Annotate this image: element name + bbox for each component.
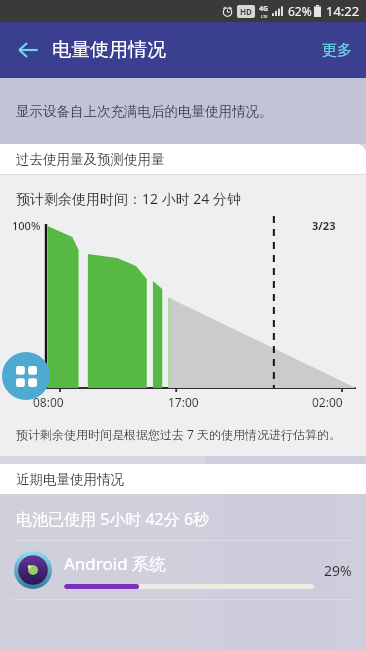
staticText: 100% — [12, 218, 41, 233]
staticText: 更多 — [322, 41, 352, 60]
staticText: 过去使用量及预测使用量 — [16, 151, 165, 168]
staticText: 02:00 — [312, 394, 343, 410]
staticText: LTE — [261, 14, 268, 19]
staticText: 0% — [25, 376, 41, 391]
staticText: 29% — [324, 561, 352, 580]
staticText: 62% — [288, 3, 312, 19]
staticText: 电量使用情况 — [52, 38, 166, 62]
staticText: 14:22 — [326, 2, 360, 20]
staticText: 近期电量使用情况 — [16, 471, 124, 488]
button[interactable]: Back — [8, 30, 48, 70]
button[interactable]: Apps — [2, 352, 50, 400]
staticText: 预计剩余使用时间是根据您过去 7 天的使用情况进行估算的。 — [16, 426, 342, 442]
staticText: 显示设备自上次充满电后的电量使用情况。 — [16, 103, 273, 120]
staticText: HD — [240, 6, 252, 17]
staticText: 08:00 — [33, 394, 64, 410]
staticText: 电池已使用 5小时 42分 6秒 — [16, 508, 210, 530]
staticText: 4G — [259, 4, 269, 14]
button[interactable]: 更多 — [308, 27, 366, 74]
staticText: Android 系统 — [64, 552, 167, 575]
staticText: 3/23 — [312, 218, 336, 233]
button[interactable]: Android 系统 — [0, 541, 366, 599]
staticText: 预计剩余使用时间：12 小时 24 分钟 — [16, 189, 241, 208]
staticText: 17:00 — [168, 394, 199, 410]
